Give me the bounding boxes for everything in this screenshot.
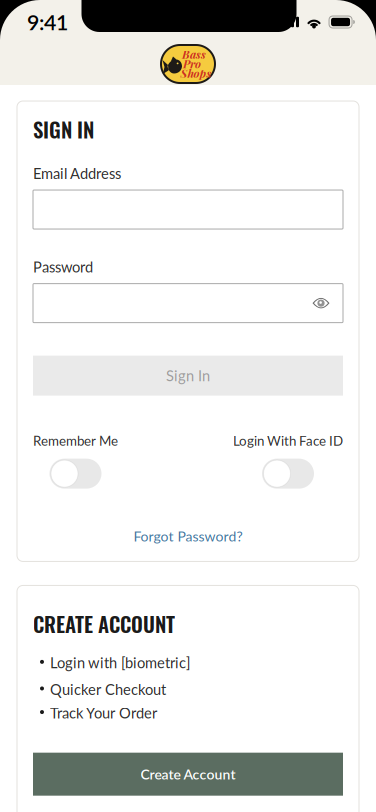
staticText: Track Your Order	[50, 704, 157, 722]
staticText: Password	[33, 258, 93, 276]
staticText: Create Account	[140, 766, 235, 783]
staticText: Sign In	[166, 367, 210, 384]
button[interactable]: Forgot Password?	[33, 528, 343, 544]
staticText: Login With Face ID	[233, 433, 343, 449]
button[interactable]: Show password	[312, 295, 343, 311]
button[interactable]: Remember Me	[49, 459, 101, 489]
button[interactable]: Create Account	[33, 753, 343, 796]
button[interactable]: Login With Face ID	[262, 459, 314, 489]
staticText: Email Address	[33, 164, 121, 182]
staticText: 9:41	[27, 9, 68, 35]
staticText: Remember Me	[33, 433, 118, 449]
staticText: SIGN IN	[33, 114, 94, 144]
staticText: Bass	[182, 46, 206, 61]
staticText: Forgot Password?	[133, 528, 242, 544]
button[interactable]: Sign In	[33, 356, 343, 396]
staticText: Pro	[183, 56, 201, 71]
staticText: Shops	[180, 65, 211, 80]
staticText: Quicker Checkout	[50, 680, 166, 698]
staticText: CREATE ACCOUNT	[33, 608, 175, 639]
staticText: Login with [biometric]	[50, 654, 190, 671]
